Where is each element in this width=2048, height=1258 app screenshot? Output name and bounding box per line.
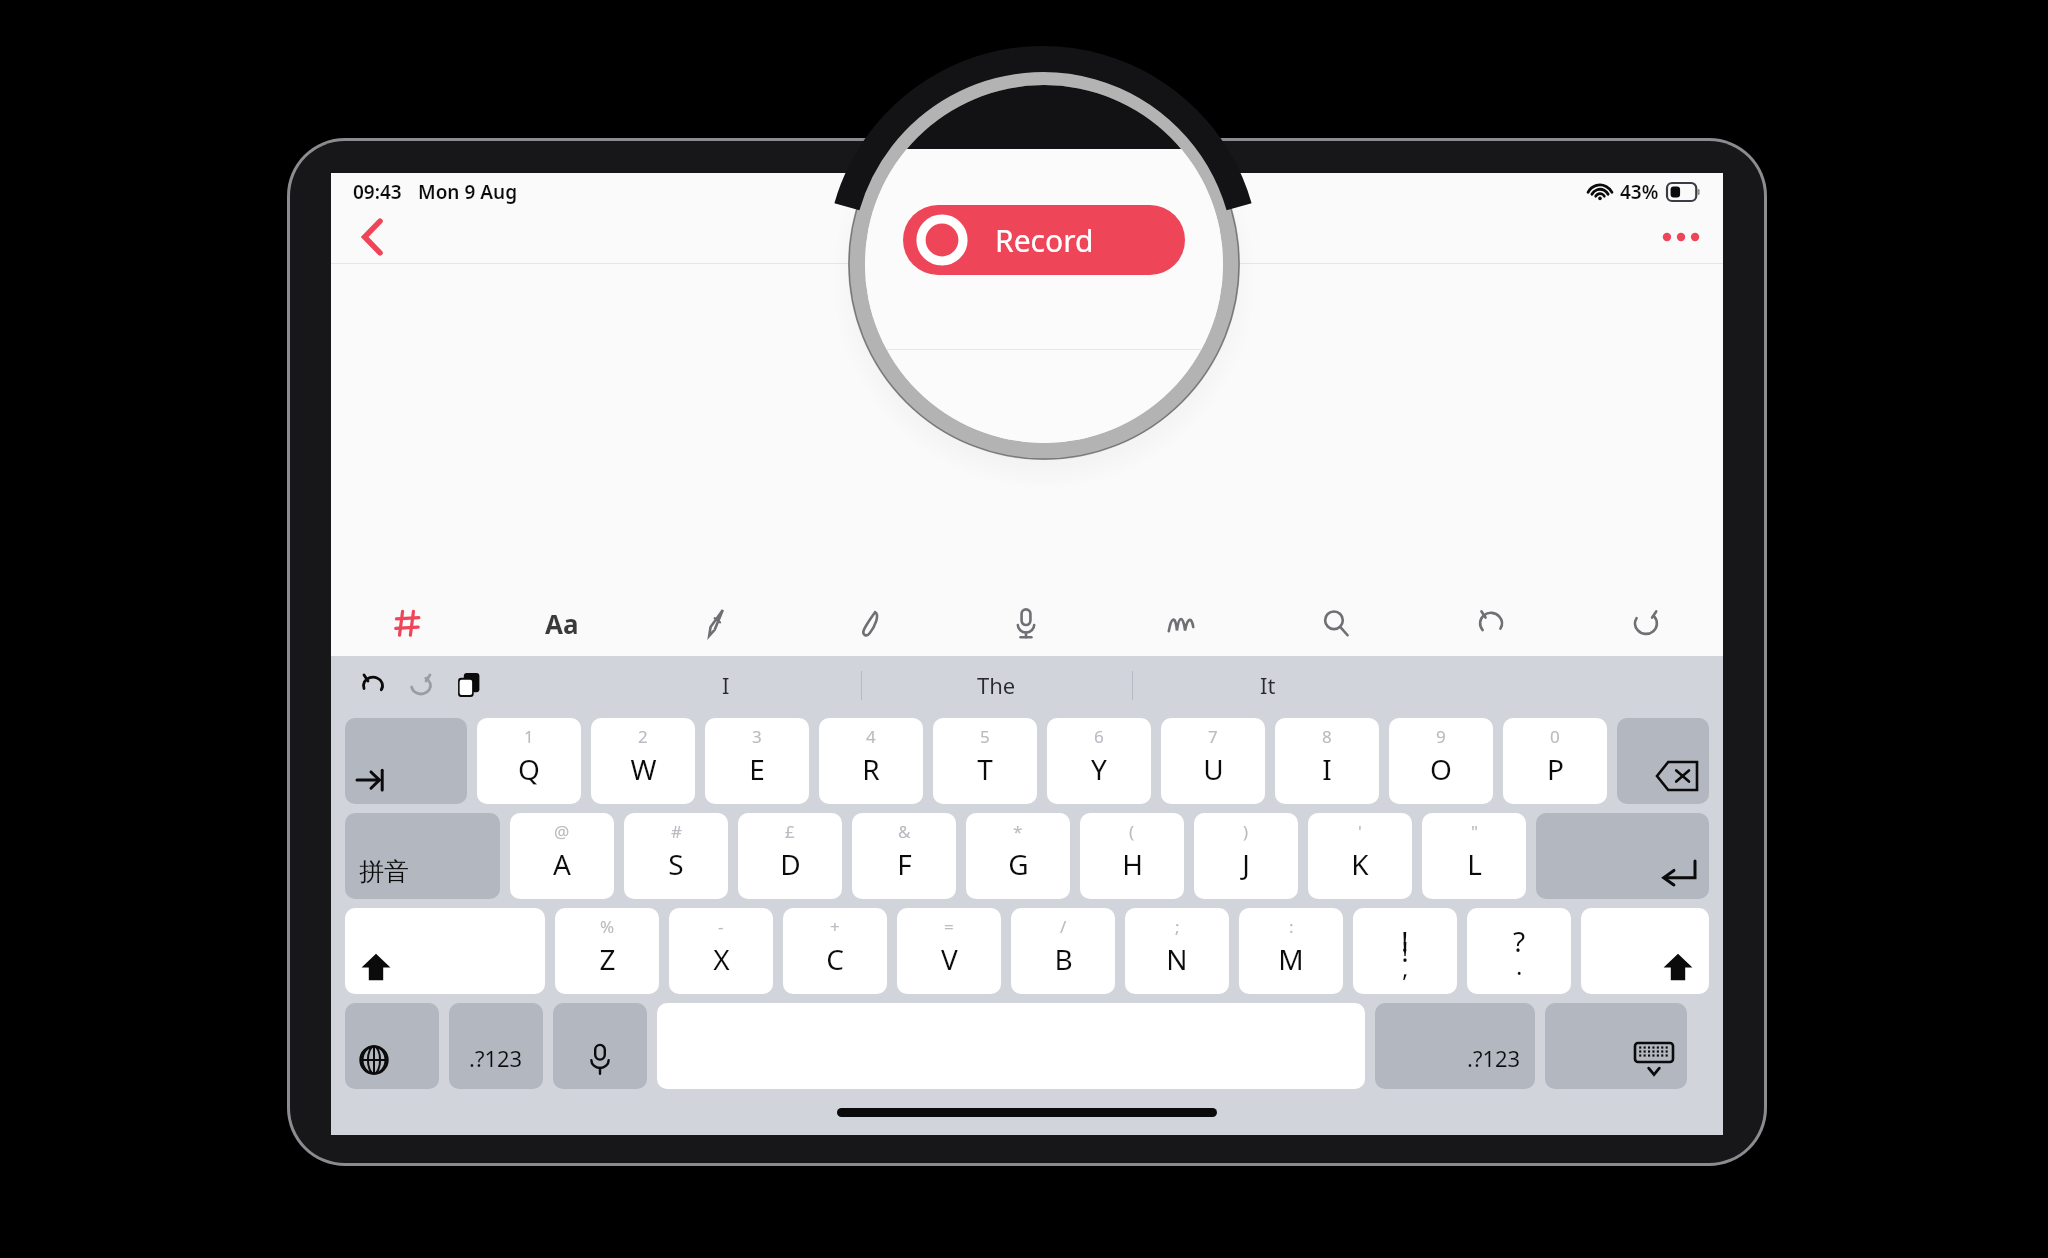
staticText: %	[600, 915, 615, 938]
button[interactable]: I	[591, 656, 861, 714]
staticText: 2	[638, 725, 648, 748]
button[interactable]: Redo	[397, 661, 445, 709]
button[interactable]: scribble	[1103, 590, 1258, 656]
button[interactable]: The	[861, 656, 1132, 714]
button[interactable]: hash	[331, 590, 485, 656]
staticText: S	[668, 845, 684, 883]
staticText: 09:43	[353, 179, 402, 205]
button[interactable]: Z	[555, 908, 659, 994]
staticText: D	[780, 845, 801, 883]
button[interactable]: Back	[345, 211, 401, 263]
button[interactable]: Y	[1047, 718, 1151, 804]
button[interactable]: W	[591, 718, 695, 804]
staticText: =	[944, 915, 954, 938]
button[interactable]: D	[738, 813, 842, 899]
staticText: ?	[1513, 922, 1526, 960]
button[interactable]: Pinyin	[345, 813, 500, 899]
button[interactable]: X	[669, 908, 773, 994]
button[interactable]: Return	[1536, 813, 1709, 899]
button[interactable]: K	[1308, 813, 1412, 899]
button[interactable]: J	[1194, 813, 1298, 899]
button[interactable]: mic	[948, 590, 1103, 656]
staticText: I	[722, 670, 730, 700]
button[interactable]: pen	[639, 590, 793, 656]
button[interactable]: Undo	[349, 661, 397, 709]
button[interactable]: G	[966, 813, 1070, 899]
staticText: C	[826, 940, 844, 978]
button[interactable]: O	[1389, 718, 1493, 804]
button[interactable]: Paste	[445, 661, 493, 709]
staticText: X	[713, 940, 730, 978]
button[interactable]: search	[1258, 590, 1413, 656]
staticText: Y	[1091, 750, 1107, 788]
button[interactable]: clip	[793, 590, 948, 656]
button[interactable]: Tab	[345, 718, 467, 804]
button[interactable]: Shift right	[1581, 908, 1709, 994]
staticText: &	[898, 820, 911, 843]
button[interactable]: Record	[903, 205, 1185, 275]
staticText: .	[1516, 949, 1523, 982]
staticText: It	[1260, 670, 1276, 700]
button[interactable]: M	[1239, 908, 1343, 994]
button[interactable]: F	[852, 813, 956, 899]
staticText: *	[1013, 820, 1023, 843]
staticText: N	[1166, 940, 1188, 978]
staticText: O	[1430, 750, 1452, 788]
staticText: The	[977, 670, 1016, 700]
staticText: ,	[1402, 951, 1409, 984]
staticText: F	[897, 845, 912, 883]
button[interactable]: R	[819, 718, 923, 804]
button[interactable]: Globe	[345, 1003, 439, 1089]
button[interactable]: U	[1161, 718, 1265, 804]
staticText: I	[1322, 750, 1332, 788]
staticText: .?123	[1467, 1043, 1521, 1073]
staticText: P	[1547, 750, 1564, 788]
button[interactable]: Question	[1467, 908, 1571, 994]
staticText: Mon 9 Aug	[418, 179, 518, 205]
button[interactable]: B	[1011, 908, 1115, 994]
button[interactable]: Hide keyboard	[1545, 1003, 1687, 1089]
staticText: #	[671, 820, 682, 843]
button[interactable]: It	[1132, 656, 1403, 714]
button[interactable]: Dictate	[553, 1003, 647, 1089]
staticText: G	[1008, 845, 1029, 883]
staticText: E	[749, 750, 765, 788]
staticText: A	[553, 845, 571, 883]
button[interactable]: E	[705, 718, 809, 804]
button[interactable]: P	[1503, 718, 1607, 804]
button[interactable]: C	[783, 908, 887, 994]
button[interactable]: .?123	[449, 1003, 543, 1089]
staticText: V	[941, 940, 958, 978]
button[interactable]: H	[1080, 813, 1184, 899]
button[interactable]: Shift	[345, 908, 545, 994]
button[interactable]: A	[510, 813, 614, 899]
staticText: 4	[866, 725, 876, 748]
staticText: 7	[1208, 725, 1218, 748]
staticText: Record	[995, 220, 1094, 261]
staticText: )	[1243, 820, 1249, 843]
staticText: 6	[1094, 725, 1104, 748]
staticText: 5	[980, 725, 990, 748]
staticText: M	[1278, 940, 1304, 978]
button[interactable]: L	[1422, 813, 1526, 899]
button[interactable]: S	[624, 813, 728, 899]
button[interactable]: .?123 right	[1375, 1003, 1535, 1089]
button[interactable]: I	[1275, 718, 1379, 804]
staticText: !	[1401, 922, 1409, 960]
button[interactable]: undo	[1413, 590, 1568, 656]
staticText: Q	[518, 750, 540, 788]
button[interactable]: More options	[1653, 211, 1709, 263]
staticText: T	[977, 750, 993, 788]
button[interactable]: redo	[1568, 590, 1723, 656]
button[interactable]: T	[933, 718, 1037, 804]
button[interactable]: Backspace	[1617, 718, 1709, 804]
staticText: L	[1467, 845, 1482, 883]
button[interactable]: Q	[477, 718, 581, 804]
button[interactable]: Exclamation	[1353, 908, 1457, 994]
button[interactable]: V	[897, 908, 1001, 994]
button[interactable]: N	[1125, 908, 1229, 994]
staticText: H	[1122, 845, 1143, 883]
staticText: Aa	[545, 606, 579, 641]
button[interactable]: aa	[485, 590, 639, 656]
